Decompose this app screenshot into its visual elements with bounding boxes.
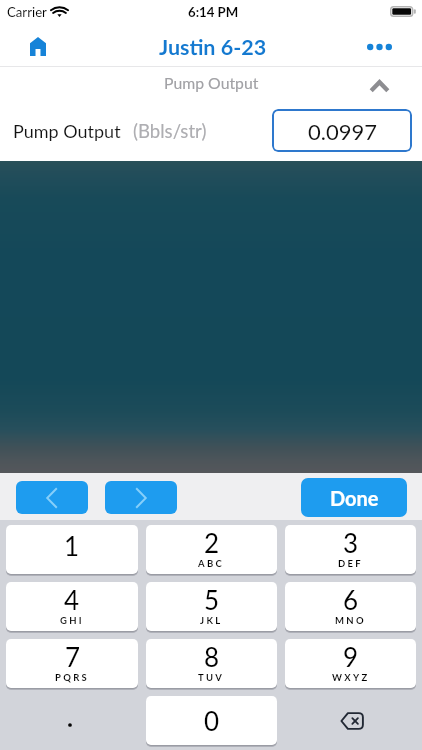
staticText: TUV bbox=[198, 672, 225, 683]
staticText: 3 bbox=[343, 527, 359, 558]
button[interactable]: More options bbox=[359, 29, 399, 65]
staticText: 2 bbox=[204, 527, 220, 558]
staticText: DEF bbox=[338, 558, 363, 569]
staticText: Done bbox=[330, 486, 379, 510]
staticText: MNO bbox=[335, 615, 366, 626]
button[interactable]: Home bbox=[21, 29, 55, 63]
staticText: GHI bbox=[60, 615, 84, 626]
staticText: 0.0997 bbox=[308, 118, 377, 144]
button[interactable]: 2 bbox=[146, 525, 277, 574]
staticText: Carrier bbox=[7, 4, 47, 20]
staticText: 5 bbox=[204, 584, 220, 615]
button[interactable]: 9 bbox=[285, 639, 416, 688]
staticText: 1 bbox=[64, 530, 80, 561]
button[interactable]: 0 bbox=[146, 696, 277, 745]
staticText: 6:14 PM bbox=[188, 4, 239, 20]
staticText: 7 bbox=[65, 641, 81, 672]
staticText: Pump Output bbox=[164, 73, 259, 92]
button[interactable]: 7 bbox=[6, 639, 138, 688]
button[interactable]: 4 bbox=[6, 582, 138, 631]
staticText: WXYZ bbox=[332, 672, 370, 683]
button[interactable]: Next field bbox=[105, 481, 177, 514]
button[interactable]: 5 bbox=[146, 582, 277, 631]
staticText: ABC bbox=[198, 558, 225, 569]
button[interactable]: Done bbox=[301, 478, 407, 517]
staticText: 4 bbox=[64, 584, 80, 615]
button[interactable]: 6 bbox=[285, 582, 416, 631]
staticText: JKL bbox=[200, 615, 223, 626]
button[interactable]: Decimal point bbox=[6, 696, 138, 745]
button[interactable]: Delete bbox=[285, 696, 416, 745]
staticText: 0 bbox=[204, 705, 220, 736]
staticText: Justin 6-23 bbox=[159, 34, 267, 60]
staticText: PQRS bbox=[55, 672, 90, 683]
button[interactable]: 8 bbox=[146, 639, 277, 688]
staticText: (Bbls/str) bbox=[133, 120, 207, 142]
staticText: 6 bbox=[343, 584, 359, 615]
button[interactable]: Collapse section bbox=[363, 68, 395, 100]
staticText: Pump Output bbox=[13, 120, 121, 142]
button[interactable]: 0.0997 bbox=[272, 109, 412, 152]
staticText: 8 bbox=[204, 641, 220, 672]
staticText: 9 bbox=[343, 641, 359, 672]
button[interactable]: Previous field bbox=[16, 481, 88, 514]
button[interactable]: 1 bbox=[6, 525, 138, 574]
button[interactable]: 3 bbox=[285, 525, 416, 574]
